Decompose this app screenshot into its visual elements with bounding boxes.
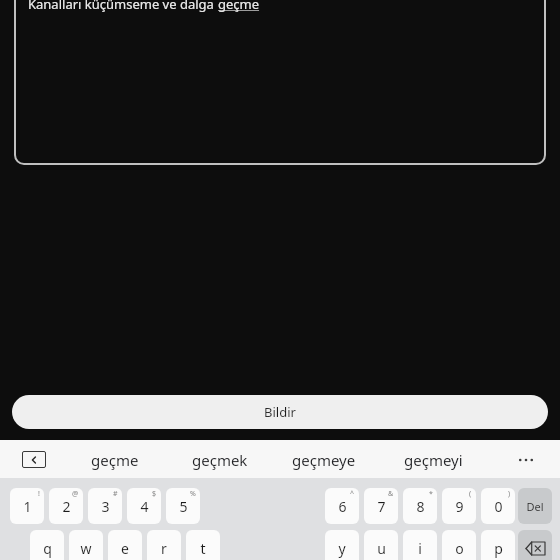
staticText: & <box>388 489 394 499</box>
button[interactable]: w <box>69 530 103 560</box>
button[interactable]: 2 <box>49 488 83 524</box>
staticText: w <box>80 539 92 558</box>
staticText: @ <box>72 489 79 499</box>
staticText: geçmek <box>192 450 248 470</box>
button[interactable]: o <box>442 530 476 560</box>
staticText: i <box>418 539 422 558</box>
button[interactable]: i <box>403 530 437 560</box>
button[interactable]: 0 <box>481 488 515 524</box>
staticText: ! <box>38 489 40 499</box>
button[interactable]: 1 <box>10 488 44 524</box>
button[interactable]: Backspace <box>518 530 552 560</box>
button[interactable]: More suggestions <box>514 448 538 472</box>
staticText: * <box>429 489 433 499</box>
staticText: 2 <box>62 497 71 516</box>
button[interactable]: geçmek <box>192 448 248 472</box>
button[interactable]: Del <box>518 488 552 524</box>
staticText: r <box>161 539 167 558</box>
staticText: 1 <box>23 497 32 516</box>
button[interactable]: geçme <box>91 448 139 472</box>
button[interactable]: 3 <box>88 488 122 524</box>
button[interactable] <box>14 0 546 165</box>
staticText: o <box>455 539 464 558</box>
staticText: y <box>338 539 346 558</box>
button[interactable]: 7 <box>364 488 398 524</box>
staticText: geçmeyi <box>404 450 463 470</box>
button[interactable]: 8 <box>403 488 437 524</box>
staticText: ) <box>508 489 511 499</box>
button[interactable]: geçmeye <box>292 448 356 472</box>
button[interactable]: y <box>325 530 359 560</box>
staticText: % <box>190 489 196 499</box>
staticText: Del <box>526 499 544 514</box>
staticText: Kanalları küçümseme ve dalga <box>28 0 218 13</box>
staticText: 6 <box>338 497 347 516</box>
staticText: 3 <box>101 497 110 516</box>
staticText: 4 <box>140 497 149 516</box>
button[interactable]: Bildir <box>12 395 548 429</box>
button[interactable]: p <box>481 530 515 560</box>
staticText: u <box>377 539 386 558</box>
staticText: geçme <box>91 450 139 470</box>
staticText: 0 <box>494 497 503 516</box>
staticText: ( <box>469 489 472 499</box>
staticText: $ <box>152 489 157 499</box>
staticText: geçmeye <box>292 450 356 470</box>
staticText: t <box>200 539 206 558</box>
staticText: 8 <box>416 497 425 516</box>
button[interactable]: t <box>186 530 220 560</box>
button[interactable]: geçmeyi <box>404 448 463 472</box>
button[interactable]: 5 <box>166 488 200 524</box>
staticText: Bildir <box>264 403 296 421</box>
staticText: e <box>121 539 129 558</box>
staticText: p <box>494 539 503 558</box>
staticText: q <box>43 539 52 558</box>
staticText: 7 <box>377 497 386 516</box>
button[interactable]: e <box>108 530 142 560</box>
button[interactable]: 6 <box>325 488 359 524</box>
staticText: 5 <box>179 497 188 516</box>
button[interactable]: q <box>30 530 64 560</box>
button[interactable]: u <box>364 530 398 560</box>
staticText: # <box>113 489 118 499</box>
button[interactable]: r <box>147 530 181 560</box>
staticText: geçme <box>218 0 260 13</box>
button[interactable]: 9 <box>442 488 476 524</box>
button[interactable]: 4 <box>127 488 161 524</box>
staticText: 9 <box>455 497 464 516</box>
button[interactable]: Previous <box>22 451 46 468</box>
staticText: ^ <box>350 489 355 499</box>
